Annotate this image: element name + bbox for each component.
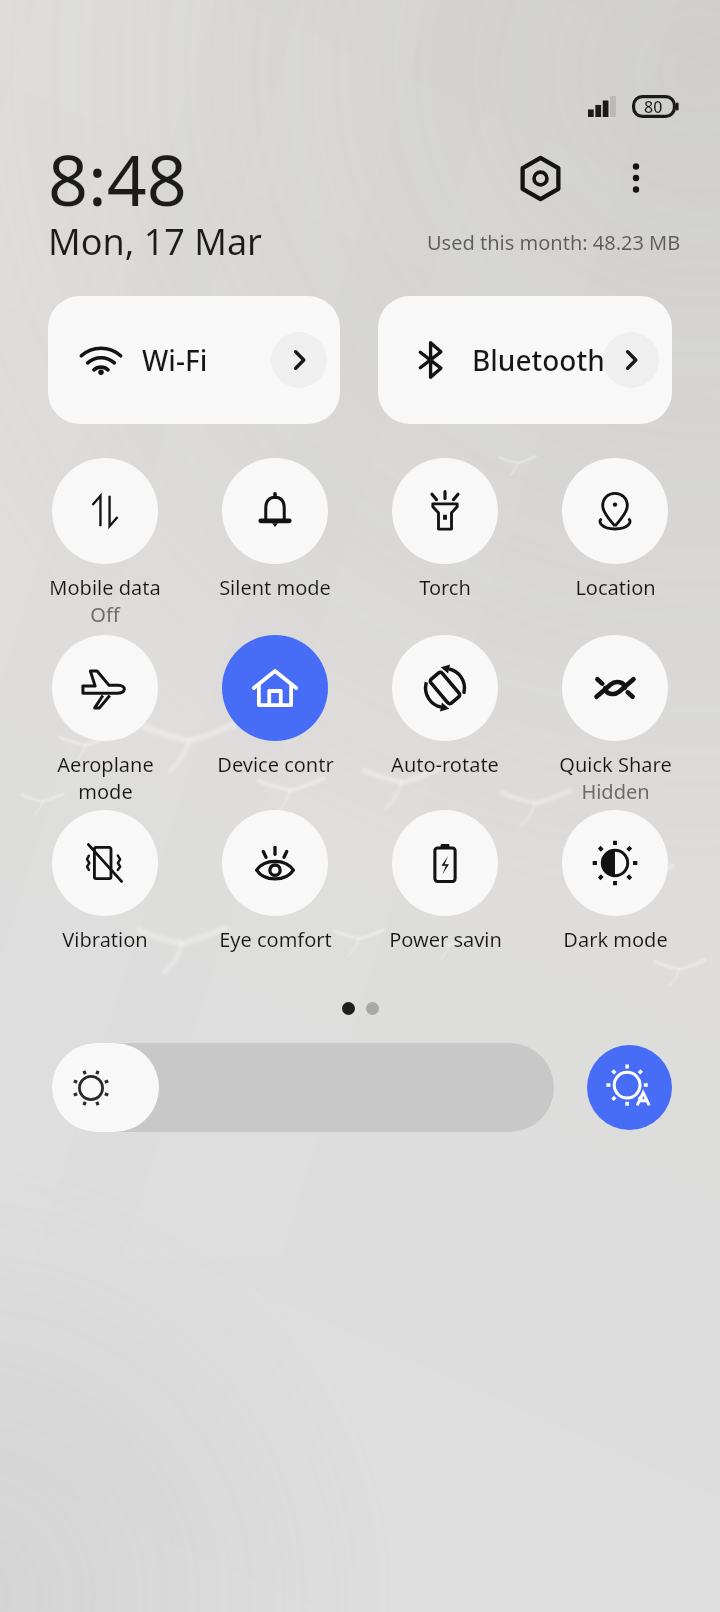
staticText: Device contr: [217, 751, 334, 778]
staticText: Dark mode: [563, 926, 668, 953]
button[interactable]: Aeroplane mode: [21, 635, 189, 805]
button[interactable]: Auto brightness: [587, 1045, 672, 1130]
staticText: Aeroplane mode: [57, 751, 154, 805]
staticText: Quick Share: [559, 751, 672, 778]
button[interactable]: Eye comfort: [191, 810, 359, 953]
staticText: Off: [90, 601, 120, 628]
button[interactable]: Device contr: [191, 635, 359, 778]
staticText: Hidden: [581, 778, 650, 805]
button[interactable]: Page indicator: [330, 992, 390, 1024]
staticText: 80: [644, 96, 663, 118]
button[interactable]: Mobile data: [21, 458, 189, 628]
button[interactable]: Brightness: [52, 1043, 554, 1132]
button[interactable]: More options: [605, 147, 667, 209]
staticText: Vibration: [62, 926, 148, 953]
button[interactable]: Wi-Fi: [48, 296, 340, 424]
button[interactable]: Vibration: [21, 810, 189, 953]
button[interactable]: Location: [531, 458, 699, 601]
button[interactable]: Auto-rotate: [361, 635, 529, 778]
staticText: Used this month: 48.23 MB: [427, 229, 681, 256]
staticText: Location: [575, 574, 656, 601]
button[interactable]: Torch: [361, 458, 529, 601]
staticText: Mobile data: [49, 574, 161, 601]
button[interactable]: Power savin: [361, 810, 529, 953]
staticText: Bluetooth: [472, 341, 605, 379]
staticText: Wi-Fi: [142, 341, 208, 379]
staticText: 8:48: [48, 131, 187, 226]
button[interactable]: Bluetooth: [378, 296, 672, 424]
staticText: Power savin: [389, 926, 502, 953]
button[interactable]: Settings: [509, 147, 571, 209]
staticText: Silent mode: [219, 574, 331, 601]
button[interactable]: Silent mode: [191, 458, 359, 601]
staticText: Torch: [419, 574, 471, 601]
staticText: Mon, 17 Mar: [48, 217, 262, 266]
staticText: Auto-rotate: [391, 751, 499, 778]
button[interactable]: Dark mode: [531, 810, 699, 953]
staticText: Eye comfort: [219, 926, 332, 953]
button[interactable]: Quick Share: [531, 635, 699, 805]
